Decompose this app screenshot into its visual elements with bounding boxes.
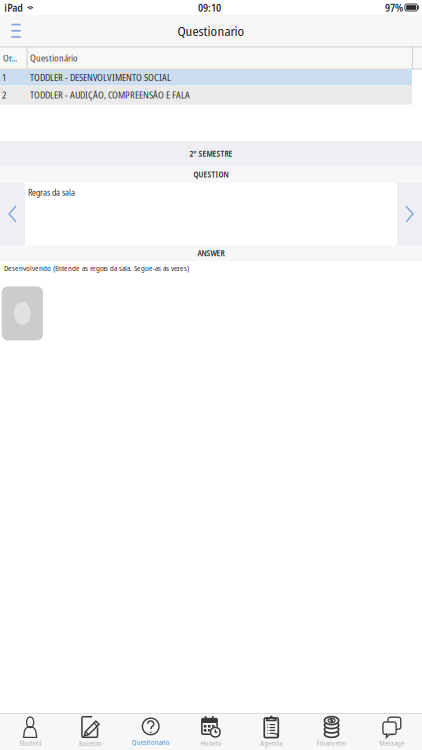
staticText: Questionário bbox=[30, 52, 78, 64]
staticText: Questionario bbox=[177, 22, 244, 40]
staticText: Financeiro bbox=[317, 738, 347, 748]
button[interactable]: Horario bbox=[181, 713, 241, 750]
button[interactable]: 2 bbox=[0, 85, 422, 104]
button[interactable]: Boletim bbox=[60, 713, 121, 750]
button[interactable]: 1 bbox=[0, 69, 422, 85]
staticText: 09:10 bbox=[198, 0, 221, 15]
button[interactable]: Previous question bbox=[0, 184, 25, 244]
staticText: TODDLER - DESENVOLVIMENTO SOCIAL bbox=[30, 71, 171, 84]
staticText: TODDLER - AUDIÇÃO, COMPREENSÃO E FALA bbox=[30, 89, 190, 101]
button[interactable]: Student bbox=[0, 713, 60, 750]
staticText: Boletim bbox=[79, 738, 102, 748]
staticText: Message bbox=[379, 738, 404, 748]
staticText: Horario bbox=[200, 738, 221, 748]
staticText: Or... bbox=[3, 52, 17, 64]
staticText: 1 bbox=[2, 71, 6, 84]
staticText: iPad bbox=[4, 0, 23, 15]
button[interactable]: Next question bbox=[397, 184, 422, 244]
button[interactable]: Message bbox=[362, 713, 422, 750]
staticText: 97% bbox=[385, 0, 403, 15]
staticText: Questionario bbox=[132, 737, 170, 747]
staticText: QUESTION bbox=[193, 169, 228, 180]
staticText: Desenvolvendo (Entende as regras da sala… bbox=[4, 263, 189, 273]
staticText: ANSWER bbox=[197, 248, 224, 259]
staticText: Regras da sala bbox=[28, 187, 75, 198]
staticText: 2 bbox=[2, 89, 6, 101]
staticText: 2º SEMESTRE bbox=[189, 148, 232, 159]
button[interactable]: Agenda bbox=[241, 713, 301, 750]
button[interactable]: Questionario bbox=[121, 713, 181, 750]
staticText: Agenda bbox=[260, 738, 282, 748]
staticText: Student bbox=[19, 738, 41, 748]
button[interactable]: Menu bbox=[0, 18, 29, 44]
button[interactable]: Financeiro bbox=[301, 713, 362, 750]
